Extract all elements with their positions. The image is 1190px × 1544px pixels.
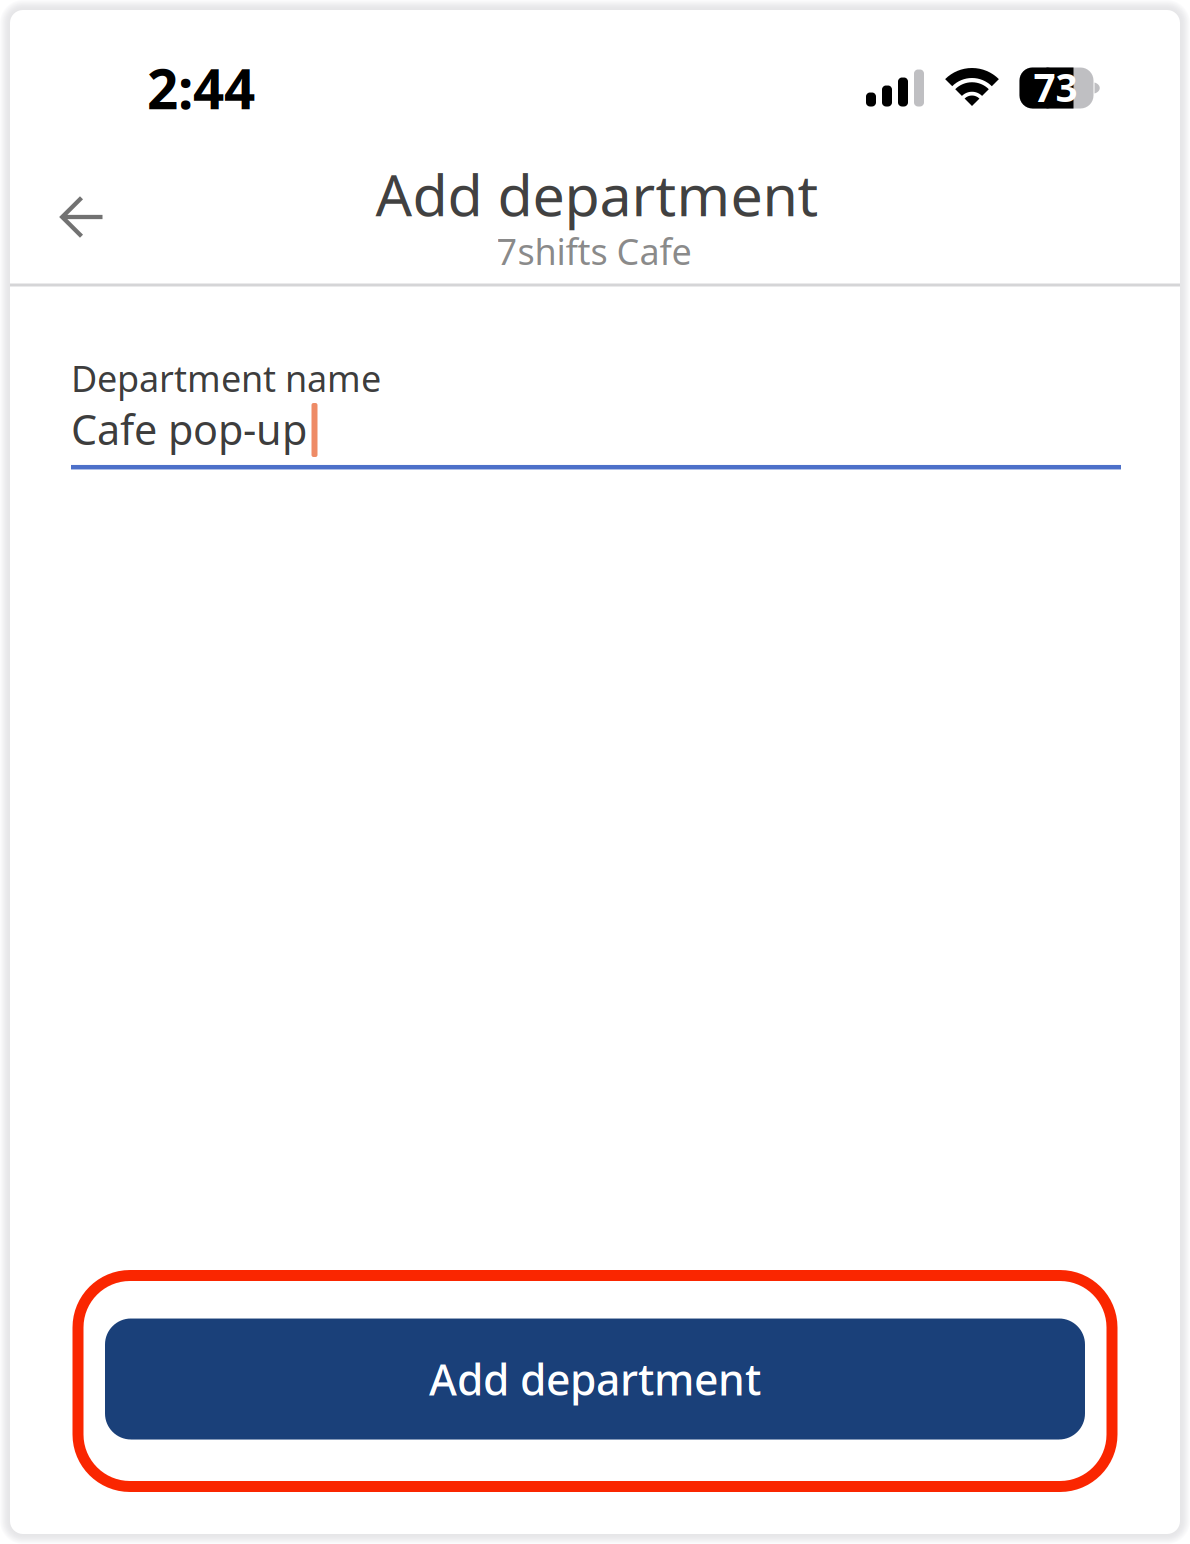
staticText: Department name bbox=[71, 354, 381, 402]
button[interactable]: Department name bbox=[71, 340, 1121, 480]
staticText: 2:44 bbox=[147, 52, 255, 124]
staticText: Add department bbox=[429, 1351, 761, 1407]
staticText: Cafe pop-up bbox=[71, 402, 307, 456]
staticText: Add department bbox=[375, 156, 818, 232]
button[interactable]: Add department bbox=[105, 1318, 1085, 1439]
button[interactable]: Back bbox=[36, 171, 128, 263]
staticText: 7shifts Cafe bbox=[496, 227, 691, 275]
staticText: 73 bbox=[1033, 61, 1077, 113]
